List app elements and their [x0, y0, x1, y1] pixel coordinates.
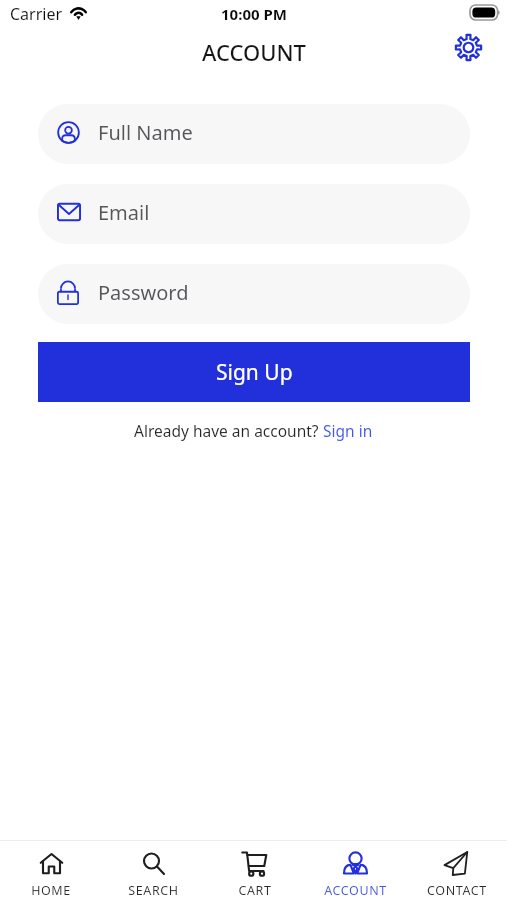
staticText: Password	[98, 279, 189, 306]
button[interactable]: Sign in	[323, 420, 373, 441]
staticText: Already have an account?	[134, 420, 323, 441]
button[interactable]: Email	[38, 184, 470, 244]
staticText: Email	[98, 199, 150, 226]
button[interactable]: ACCOUNT	[305, 851, 406, 899]
button[interactable]: Settings	[453, 32, 483, 62]
staticText: CONTACT	[427, 882, 487, 899]
staticText: ACCOUNT	[202, 37, 306, 67]
staticText: HOME	[31, 882, 71, 899]
staticText: Carrier	[10, 3, 63, 25]
button[interactable]: Full Name	[38, 104, 470, 164]
button[interactable]: SEARCH	[102, 851, 204, 899]
staticText: 10:00 PM	[221, 4, 287, 24]
staticText: ACCOUNT	[324, 882, 387, 899]
button[interactable]: CART	[204, 851, 305, 899]
button[interactable]: CONTACT	[406, 851, 507, 899]
staticText: Sign Up	[216, 358, 293, 387]
staticText: CART	[238, 882, 272, 899]
button[interactable]: HOME	[0, 851, 102, 899]
button[interactable]: Sign Up	[38, 342, 470, 402]
staticText: SEARCH	[128, 882, 179, 899]
staticText: Full Name	[98, 119, 193, 146]
button[interactable]: Password	[38, 264, 470, 324]
